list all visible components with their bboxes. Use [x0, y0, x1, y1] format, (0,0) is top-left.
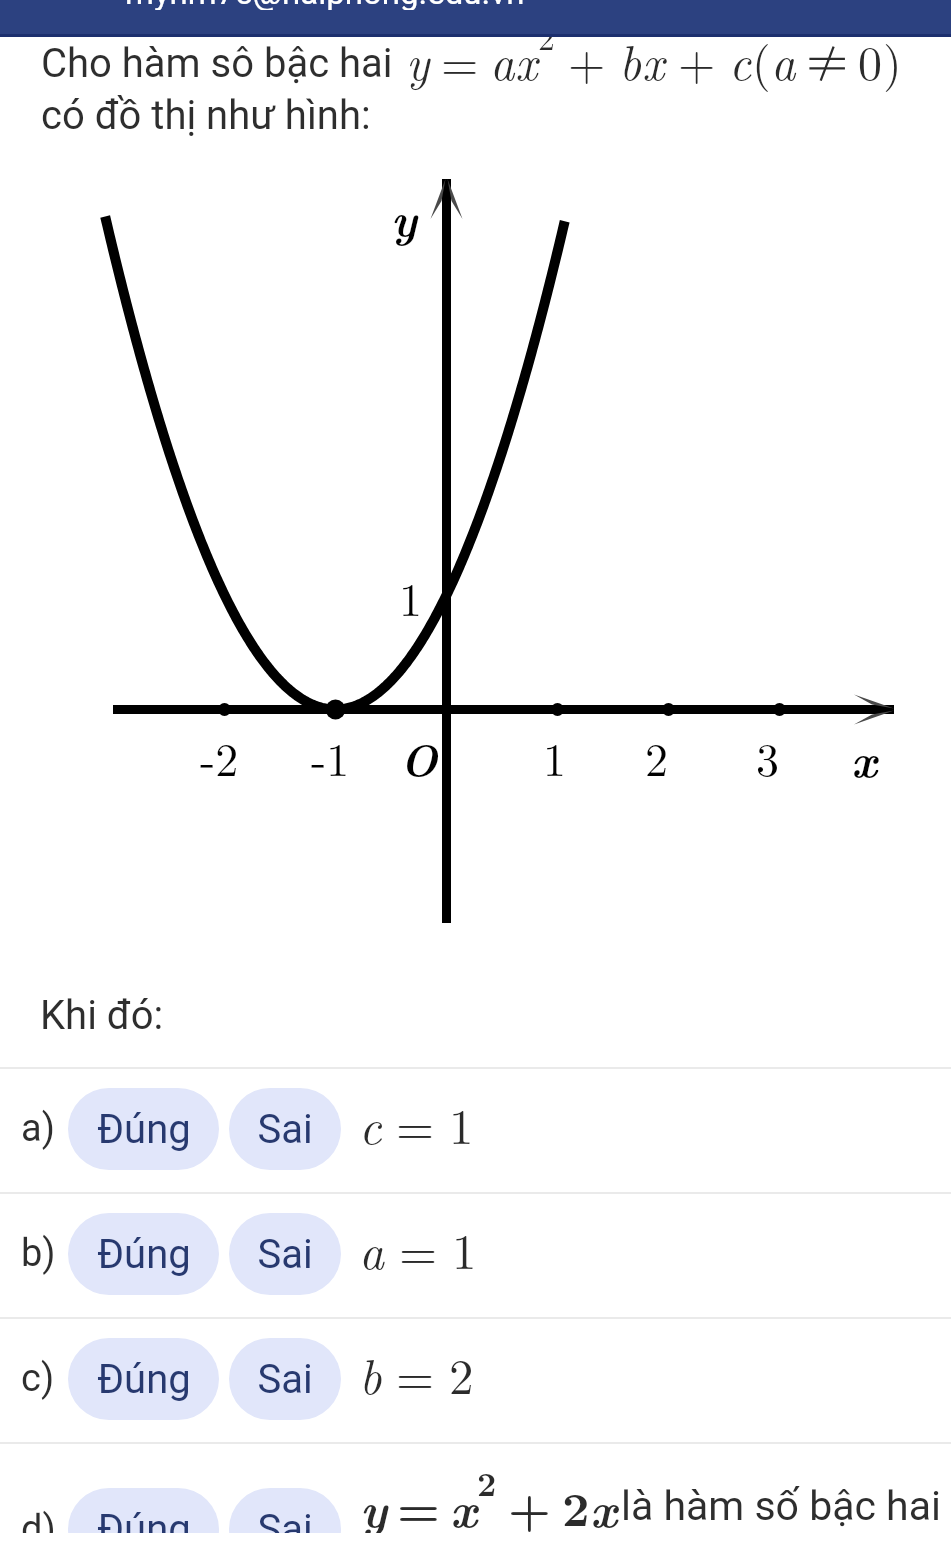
staticText: c	[729, 37, 752, 94]
button[interactable]: Đúng	[68, 1213, 219, 1295]
staticText: +	[678, 37, 716, 94]
staticText: 3	[756, 724, 779, 789]
staticText: (	[752, 37, 771, 94]
staticText: a	[771, 37, 796, 94]
staticText: y	[360, 1472, 387, 1533]
staticText: y	[391, 183, 417, 250]
staticText: Đúng	[97, 1356, 191, 1403]
staticText: -1	[311, 724, 350, 789]
staticText: y	[406, 37, 430, 94]
staticText: a	[359, 1214, 385, 1283]
button[interactable]: Sai	[229, 1088, 341, 1170]
staticText: 1	[452, 1214, 477, 1283]
staticText: myhm7c@haiphong.edu.vn	[125, 0, 525, 10]
button[interactable]: Sai	[229, 1488, 341, 1533]
staticText: x	[590, 1472, 617, 1533]
staticText: x	[851, 724, 877, 791]
staticText: Sai	[257, 1231, 313, 1278]
staticText: )	[883, 37, 902, 94]
staticText: Cho hàm sô bậc hai	[41, 40, 393, 87]
staticText: +	[568, 37, 606, 94]
staticText: có đồ thị như hình:	[41, 92, 371, 139]
staticText: =	[441, 37, 479, 94]
staticText: =	[396, 1089, 435, 1158]
button[interactable]: Sai	[229, 1338, 341, 1420]
staticText: =	[399, 1214, 438, 1283]
staticText: +	[508, 1472, 551, 1533]
staticText: Khi đó:	[40, 992, 164, 1039]
staticText: Đúng	[97, 1106, 191, 1153]
staticText: 2	[538, 37, 555, 60]
staticText: d)	[21, 1507, 56, 1533]
staticText: 2	[449, 1339, 474, 1408]
button[interactable]: Sai	[229, 1213, 341, 1295]
staticText: a	[490, 37, 515, 94]
staticText: x	[515, 37, 538, 94]
staticText: a)	[21, 1106, 55, 1151]
staticText: -2	[200, 724, 239, 789]
staticText: là hàm số bậc hai	[621, 1482, 941, 1530]
staticText: O	[400, 726, 438, 790]
staticText: b)	[21, 1231, 56, 1276]
staticText: Sai	[257, 1106, 313, 1153]
staticText: Đúng	[97, 1506, 191, 1533]
staticText: 2	[645, 724, 668, 789]
staticText: Sai	[257, 1356, 313, 1403]
button[interactable]: Đúng	[68, 1338, 219, 1420]
staticText: 1	[449, 1089, 474, 1158]
staticText: c	[359, 1089, 382, 1158]
staticText: x	[642, 37, 665, 94]
staticText: c)	[21, 1356, 55, 1401]
staticText: 0	[858, 37, 883, 94]
staticText: 1	[399, 564, 422, 629]
staticText: Đúng	[97, 1231, 191, 1278]
staticText: Sai	[257, 1506, 313, 1533]
staticText: b	[359, 1339, 382, 1408]
staticText: x	[450, 1472, 477, 1533]
staticText: =	[396, 1339, 435, 1408]
staticText: =	[397, 1472, 440, 1533]
button[interactable]: Đúng	[68, 1488, 219, 1533]
staticText: 1	[543, 724, 566, 789]
staticText: 2	[477, 1458, 497, 1506]
button[interactable]: Đúng	[68, 1088, 219, 1170]
staticText: b	[619, 37, 642, 94]
staticText: 2	[562, 1472, 590, 1533]
